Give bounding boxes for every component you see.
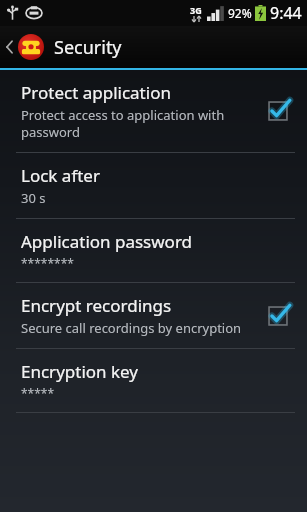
button[interactable]: Lock after [0,153,307,218]
staticText: ******** [21,255,74,271]
staticText: 92% [228,5,252,21]
button[interactable]: Checked [263,96,293,126]
staticText: 3G [190,4,202,16]
button[interactable]: Encrypt recordings [0,283,307,348]
staticText: Encrypt recordings [21,294,172,317]
staticText: Secure call recordings by encryption [21,319,242,337]
button[interactable]: Application password [0,219,307,282]
staticText: Application password [21,230,193,253]
staticText: Encryption key [21,360,138,383]
staticText: 9:44 [270,2,302,24]
button[interactable]: Encryption key [0,349,307,412]
staticText: Security [54,35,122,60]
staticText: ***** [21,385,55,401]
button[interactable]: Checked [263,301,293,331]
staticText: 30 s [21,189,46,207]
staticText: Protect access to application with passw… [21,106,255,141]
other: Back [5,39,14,55]
staticText: Protect application [21,81,171,104]
staticText: Lock after [21,164,100,187]
button[interactable]: Protect application [0,70,307,152]
button[interactable]: Back [0,26,307,68]
